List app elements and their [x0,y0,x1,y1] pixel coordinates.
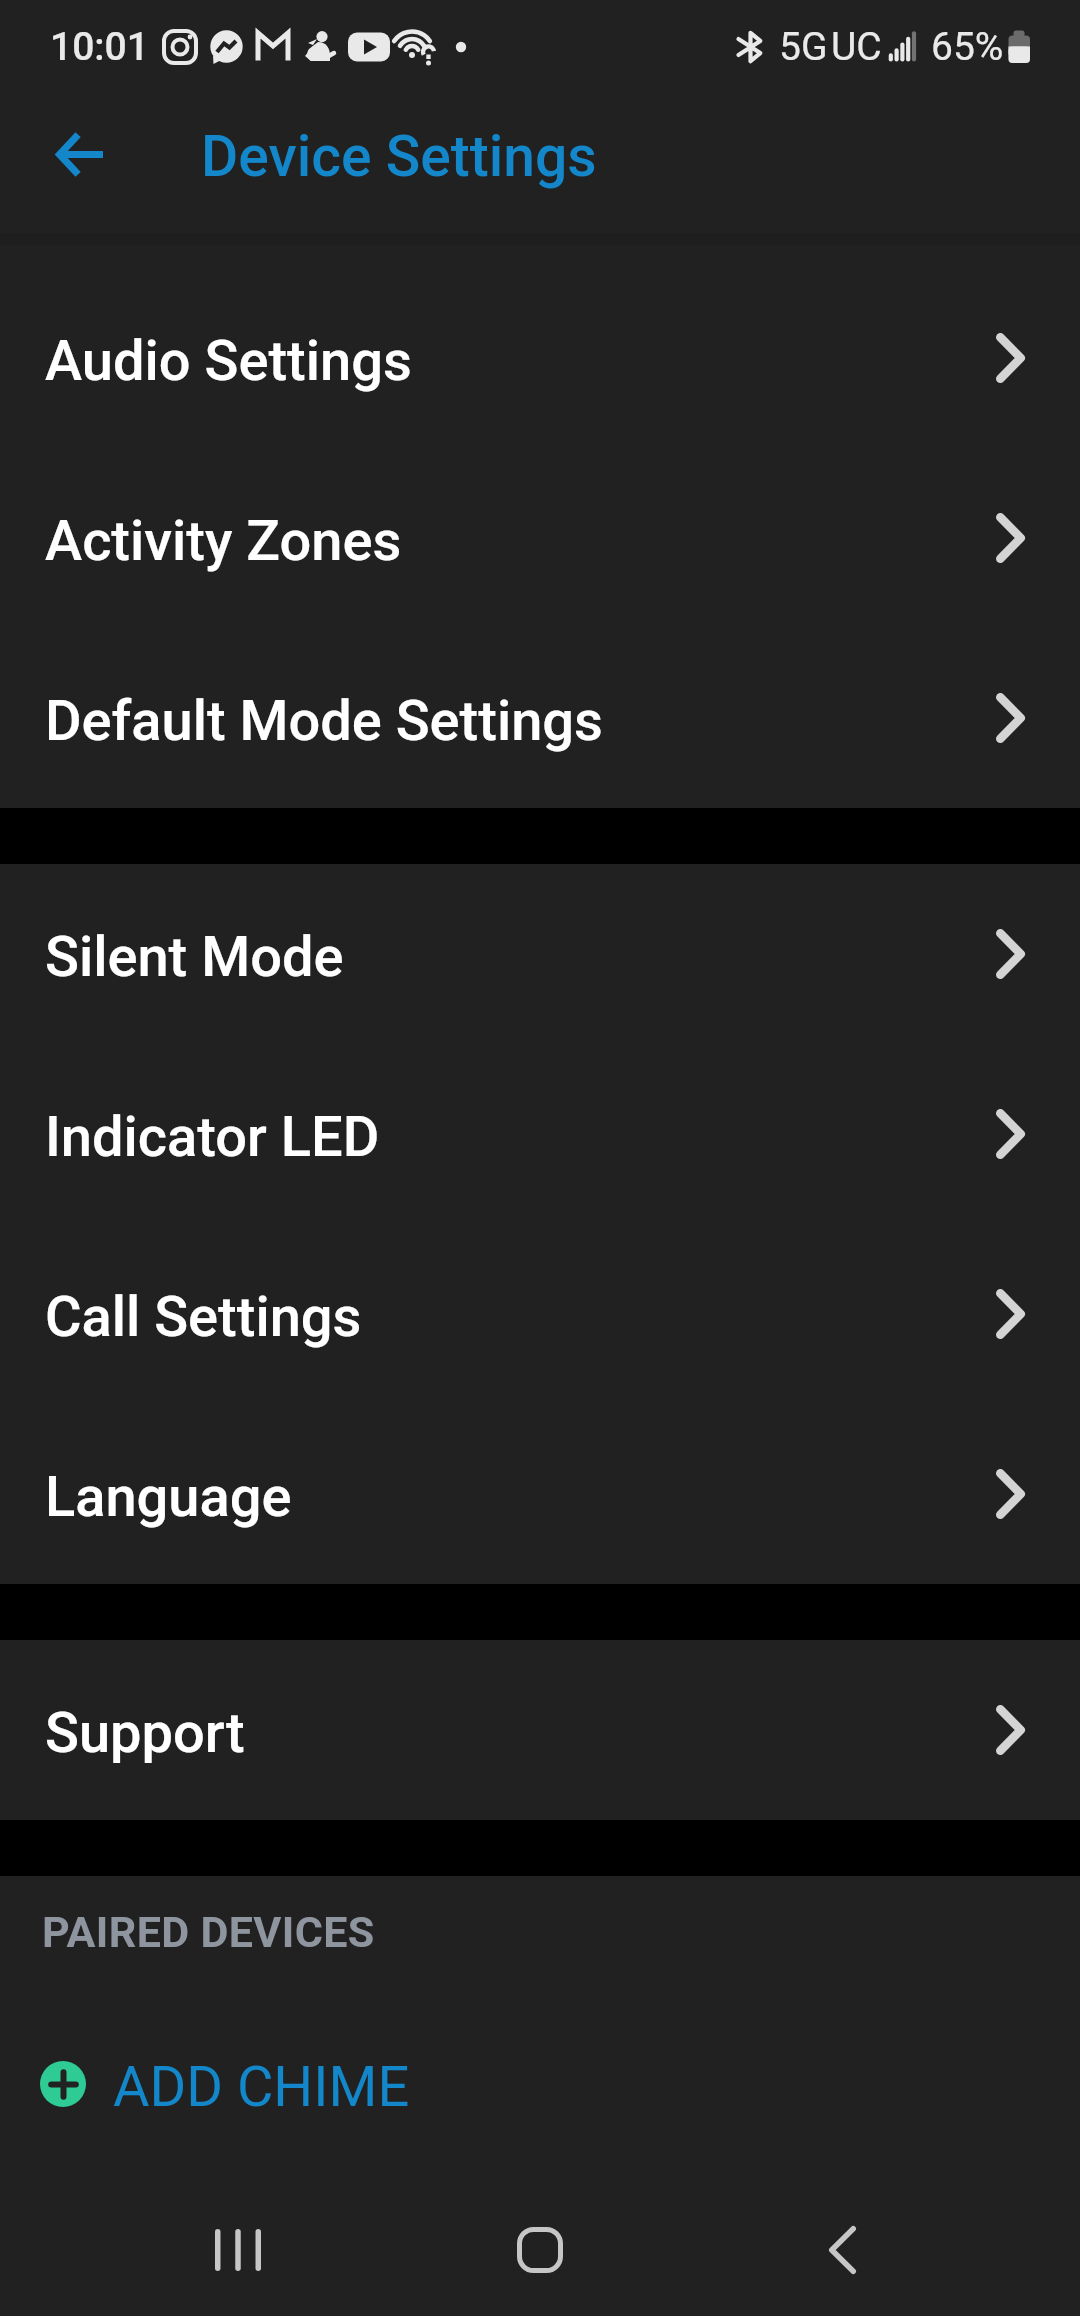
staticText: Audio Settings [45,328,412,394]
staticText: 65% [931,24,1004,70]
staticText: Default Mode Settings [45,688,603,754]
button[interactable]: Recent apps [178,2190,298,2310]
staticText: PAIRED DEVICES [42,1907,375,1957]
staticText: Call Settings [45,1284,362,1350]
button[interactable]: Default Mode Settings [0,628,1080,808]
staticText: Device Settings [201,123,597,190]
staticText: UC [831,24,882,70]
button[interactable]: ADD CHIME [0,2042,1080,2132]
staticText: Language [45,1464,292,1530]
button[interactable]: Silent Mode [0,864,1080,1044]
button[interactable]: Activity Zones [0,448,1080,628]
button[interactable]: Audio Settings [0,268,1080,448]
button[interactable]: Indicator LED [0,1044,1080,1224]
staticText: 10:01 [50,24,149,70]
staticText: Activity Zones [45,508,402,574]
button[interactable]: Language [0,1404,1080,1584]
staticText: ADD CHIME [113,2054,410,2120]
staticText: Support [45,1700,245,1766]
staticText: Silent Mode [45,924,344,990]
button[interactable]: Back [782,2190,902,2310]
button[interactable]: Back [31,106,127,202]
button[interactable]: Support [0,1640,1080,1820]
button[interactable]: Home [480,2190,600,2310]
staticText: Indicator LED [45,1104,380,1170]
button[interactable]: Call Settings [0,1224,1080,1404]
staticText: 5G [779,24,828,70]
